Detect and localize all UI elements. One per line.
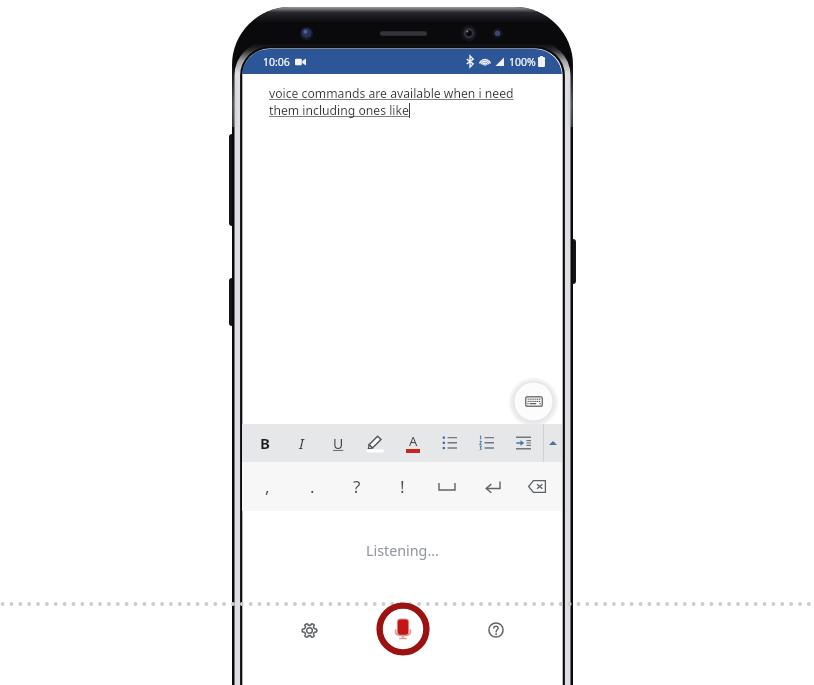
button[interactable]: A xyxy=(394,424,431,462)
staticText: I xyxy=(299,433,304,453)
staticText: Listening... xyxy=(366,541,439,560)
button[interactable]: Help xyxy=(478,612,514,648)
button[interactable]: New line xyxy=(472,462,512,511)
button[interactable]: Backspace xyxy=(517,462,557,511)
button[interactable]: Collapse toolbar xyxy=(544,424,562,462)
button[interactable]: U xyxy=(320,424,357,462)
button[interactable]: I xyxy=(283,424,320,462)
other: Backspace xyxy=(528,480,546,493)
staticText: . xyxy=(310,475,315,498)
button[interactable]: Microphone xyxy=(375,601,431,657)
button[interactable]: . xyxy=(292,462,332,511)
button[interactable]: B xyxy=(246,424,283,462)
button[interactable] xyxy=(468,424,505,462)
button[interactable]: Show keyboard xyxy=(509,377,558,426)
button[interactable]: Space xyxy=(427,462,467,511)
staticText: 100% xyxy=(509,55,536,69)
staticText: 10:06 xyxy=(263,55,290,69)
staticText: U xyxy=(333,434,344,453)
other: Space xyxy=(439,483,455,490)
staticText: A xyxy=(409,432,418,450)
button[interactable]: , xyxy=(247,462,287,511)
button[interactable]: ? xyxy=(337,462,377,511)
button[interactable] xyxy=(505,424,542,462)
staticText: ! xyxy=(400,475,405,498)
button[interactable]: ! xyxy=(382,462,422,511)
staticText: B xyxy=(260,433,270,453)
staticText: voice commands are available when i need xyxy=(269,85,514,102)
button[interactable] xyxy=(357,424,394,462)
staticText: them including ones like xyxy=(269,102,409,119)
button[interactable] xyxy=(431,424,468,462)
staticText: , xyxy=(265,475,270,498)
other: New line xyxy=(485,481,500,493)
button[interactable]: Settings xyxy=(291,612,327,648)
staticText: ? xyxy=(353,475,361,498)
